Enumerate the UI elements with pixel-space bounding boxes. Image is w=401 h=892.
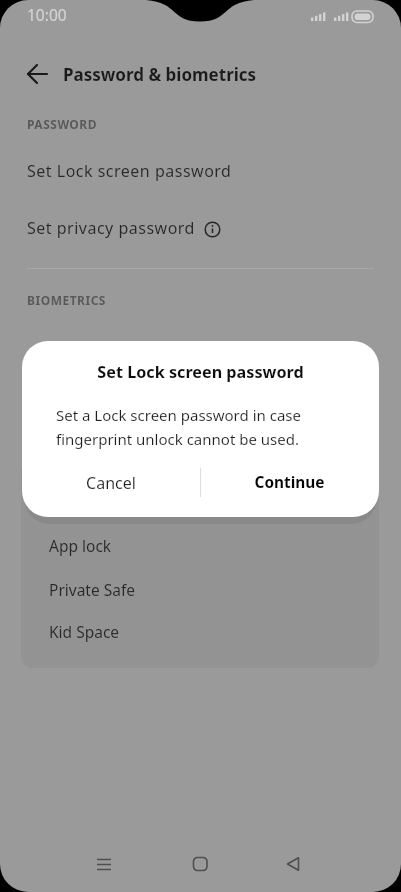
- button[interactable]: App lock: [21, 524, 379, 567]
- button[interactable]: Private Safe: [21, 567, 379, 611]
- staticText: App lock: [49, 535, 112, 556]
- staticText: Password & biometrics: [63, 63, 257, 86]
- button[interactable]: Set Lock screen password: [0, 149, 401, 193]
- staticText: Set Lock screen password: [22, 361, 379, 383]
- staticText: BIOMETRICS: [27, 292, 106, 308]
- button[interactable]: Continue: [200, 448, 379, 517]
- staticText: 10:00: [27, 4, 67, 25]
- staticText: Cancel: [22, 472, 200, 494]
- button[interactable]: Cancel: [22, 448, 200, 517]
- staticText: PASSWORD: [27, 116, 98, 132]
- staticText: Set privacy password: [27, 217, 195, 239]
- button[interactable]: [80, 840, 128, 888]
- staticText: Set a Lock screen password in case finge…: [56, 405, 301, 449]
- button[interactable]: [269, 840, 317, 888]
- staticText: Kid Space: [49, 621, 120, 642]
- staticText: Set Lock screen password: [27, 160, 232, 182]
- staticText: Continue: [200, 472, 379, 493]
- button[interactable]: Set privacy password: [0, 206, 401, 250]
- button[interactable]: [15, 52, 59, 96]
- button[interactable]: Kid Space: [21, 611, 379, 653]
- button[interactable]: [176, 840, 224, 888]
- staticText: Private Safe: [49, 579, 135, 600]
